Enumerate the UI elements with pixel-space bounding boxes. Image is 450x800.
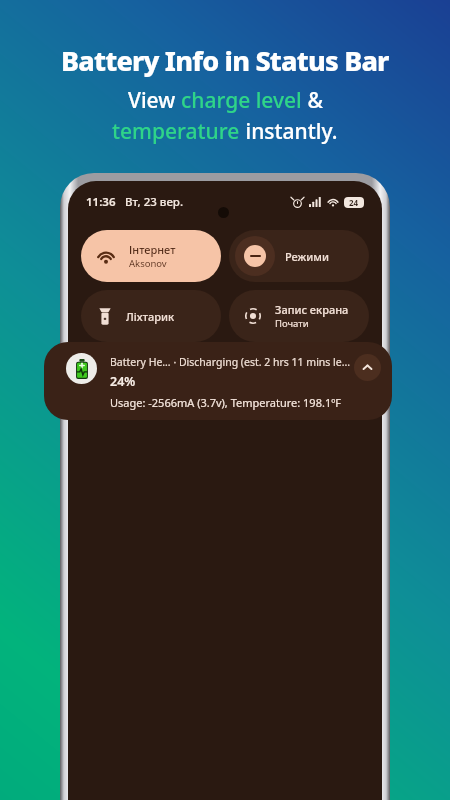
staticText: Інтернет: [129, 242, 176, 257]
staticText: View: [128, 86, 181, 115]
button[interactable]: Запис екрана: [229, 290, 369, 342]
staticText: Почати: [275, 317, 309, 330]
button[interactable]: Ліхтарик: [81, 290, 221, 342]
button[interactable]: Режими: [229, 230, 369, 282]
staticText: instantly.: [240, 117, 338, 146]
staticText: Battery He… · Discharging (est. 2 hrs 11…: [110, 355, 351, 369]
button[interactable]: Collapse notification: [354, 354, 381, 381]
button[interactable]: Collapse notification: [44, 342, 392, 420]
staticText: Aksonov: [129, 257, 167, 270]
staticText: Usage: -2566mA (3.7v), Temperature: 198.…: [110, 395, 342, 410]
staticText: Режими: [285, 249, 329, 264]
staticText: temperature: [112, 117, 240, 146]
staticText: Запис екрана: [275, 302, 349, 317]
staticText: Battery Info in Status Bar: [61, 42, 389, 79]
staticText: Ліхтарик: [126, 309, 175, 324]
staticText: 24%: [110, 373, 136, 390]
staticText: Вт, 23 вер.: [125, 194, 184, 210]
staticText: charge level: [181, 86, 302, 115]
staticText: &: [302, 86, 323, 115]
staticText: 11:36: [86, 194, 116, 210]
button[interactable]: Інтернет: [81, 230, 221, 282]
staticText: 24: [349, 197, 359, 208]
